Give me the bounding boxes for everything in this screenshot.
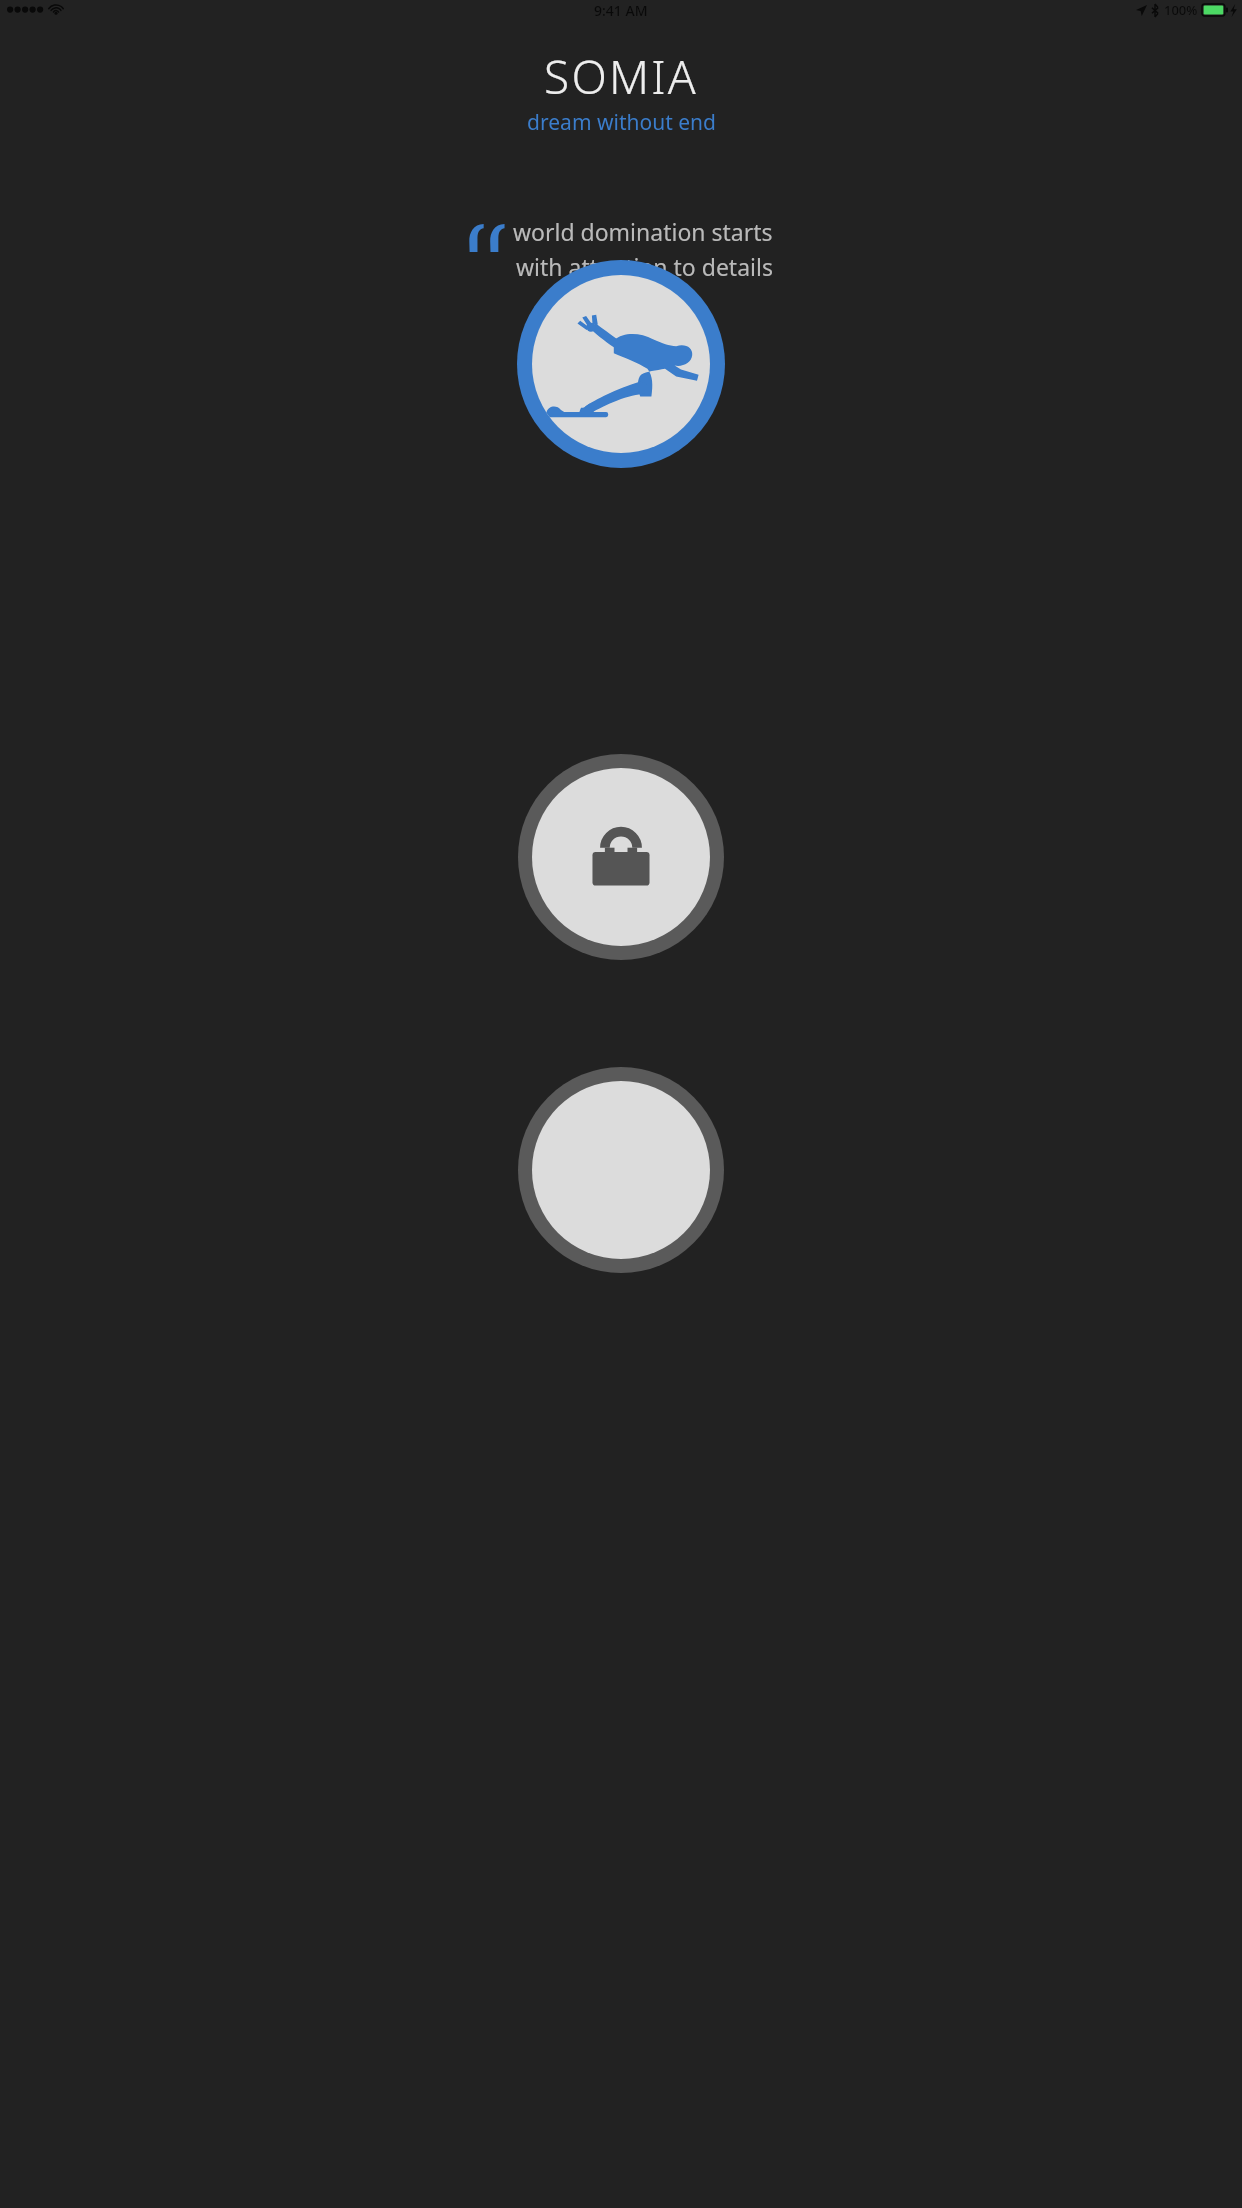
staticText: dream without end	[527, 108, 716, 137]
staticText: with attention to details	[516, 251, 773, 282]
button[interactable]: Next session	[518, 1067, 724, 1273]
staticText: 100%	[1164, 1, 1198, 19]
staticText: 9:41 AM	[594, 1, 648, 20]
staticText: SOMIA	[544, 45, 698, 108]
button[interactable]: Start workout	[517, 260, 725, 468]
staticText: world domination starts	[513, 216, 773, 247]
button[interactable]: Locked session	[518, 754, 724, 960]
